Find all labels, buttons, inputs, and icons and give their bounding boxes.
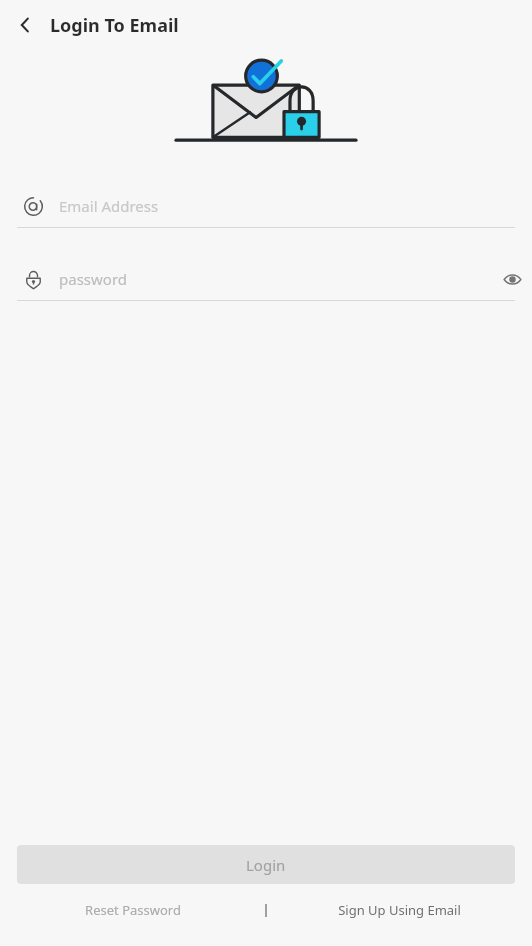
button[interactable]: Sign Up Using Email	[266, 884, 532, 936]
staticText: Login To Email	[50, 13, 179, 38]
staticText: Sign Up Using Email	[338, 901, 461, 919]
button[interactable]: Show password	[492, 259, 532, 299]
button[interactable]: Login	[17, 845, 515, 884]
button[interactable]: Reset Password	[0, 884, 266, 936]
button[interactable]: password	[0, 258, 532, 300]
staticText: Login	[246, 855, 286, 875]
staticText: password	[59, 269, 127, 289]
staticText: Email Address	[59, 196, 159, 216]
staticText: Reset Password	[85, 901, 181, 919]
button[interactable]: Email Address	[0, 185, 532, 227]
button[interactable]: Back	[0, 0, 50, 50]
